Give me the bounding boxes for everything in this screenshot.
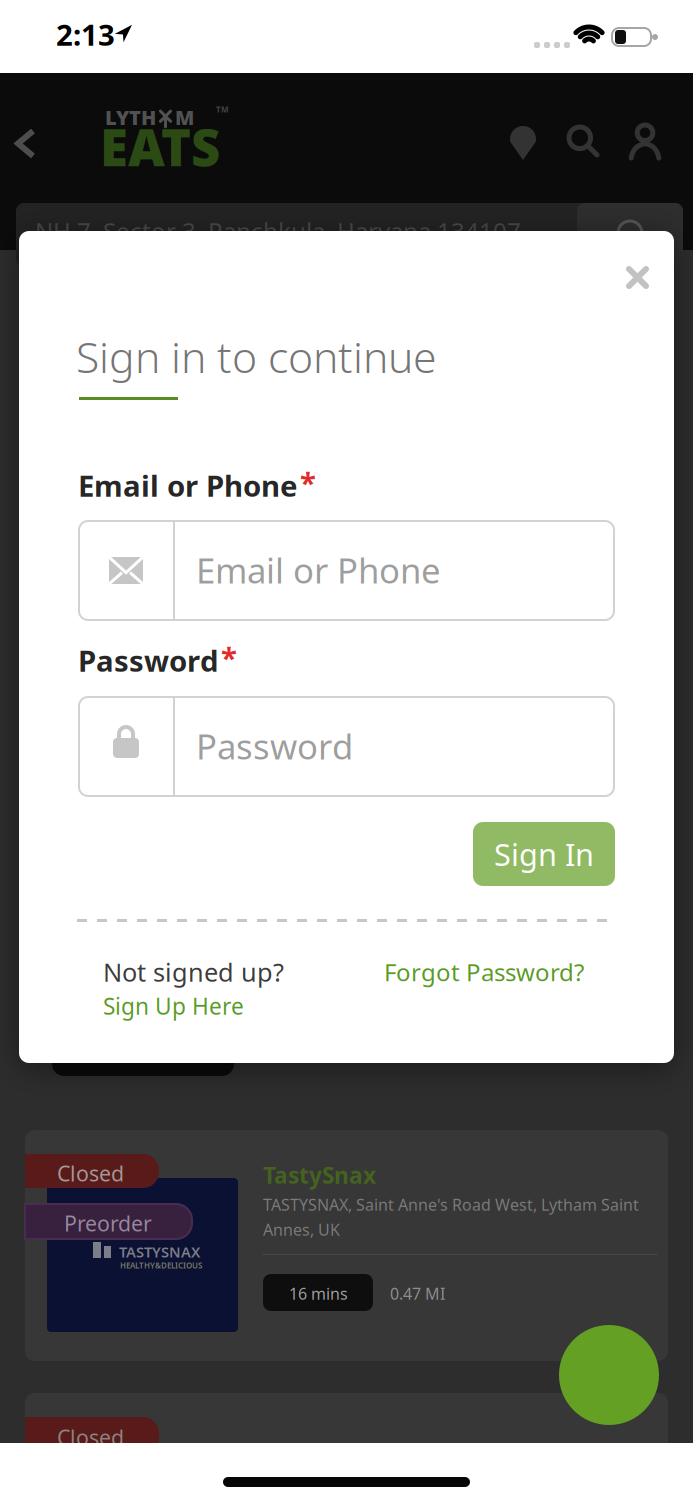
staticText: HEALTHY&DELICIOUS [120,1260,202,1271]
button[interactable]: Close [619,259,656,296]
staticText: * [300,463,316,502]
staticText: Password [78,641,219,680]
staticText: TASTYSNAX [119,1242,200,1261]
staticText: 2:13 [56,15,115,54]
staticText: LYTH [105,104,156,131]
staticText: Forgot Password? [384,956,584,988]
staticText: Preorder [64,1209,152,1237]
button[interactable]: Sign In [473,822,615,886]
button[interactable]: Back [8,121,43,166]
button[interactable]: Search [560,118,606,164]
staticText: Email or Phone [196,547,441,593]
staticText: Closed [57,1423,124,1451]
staticText: TM [216,104,229,115]
staticText: Sign In [494,834,594,874]
staticText: Password [196,723,353,769]
button[interactable]: Chat [559,1325,659,1425]
staticText: Sign in to continue [76,328,437,385]
staticText: Email or Phone [78,466,298,505]
button[interactable]: Password [78,696,615,797]
staticText: * [221,638,237,677]
button[interactable]: Forgot Password? [384,956,584,988]
button[interactable]: Email or Phone [78,520,615,621]
staticText: EATS [100,113,220,180]
button[interactable]: Location [502,118,544,168]
staticText: NH 7, Sector 3, Panchkula, Haryana 13410… [35,215,521,247]
button[interactable]: TASTYSNAX [25,1130,668,1361]
staticText: Not signed up? [103,955,284,989]
staticText: Closed [57,1159,124,1187]
button[interactable]: Sign Up Here [103,991,244,1021]
button[interactable]: Account [622,116,668,166]
staticText: Sign Up Here [103,991,244,1021]
staticText: M [175,104,194,131]
staticText: Annes, UK [263,1219,340,1240]
staticText: TastySnax [263,1160,376,1190]
button[interactable]: Delivery address [16,203,683,267]
staticText: 16 mins [289,1283,348,1304]
staticText: 0.47 MI [390,1283,445,1304]
staticText: TASTYSNAX, Saint Anne's Road West, Lytha… [263,1194,639,1215]
